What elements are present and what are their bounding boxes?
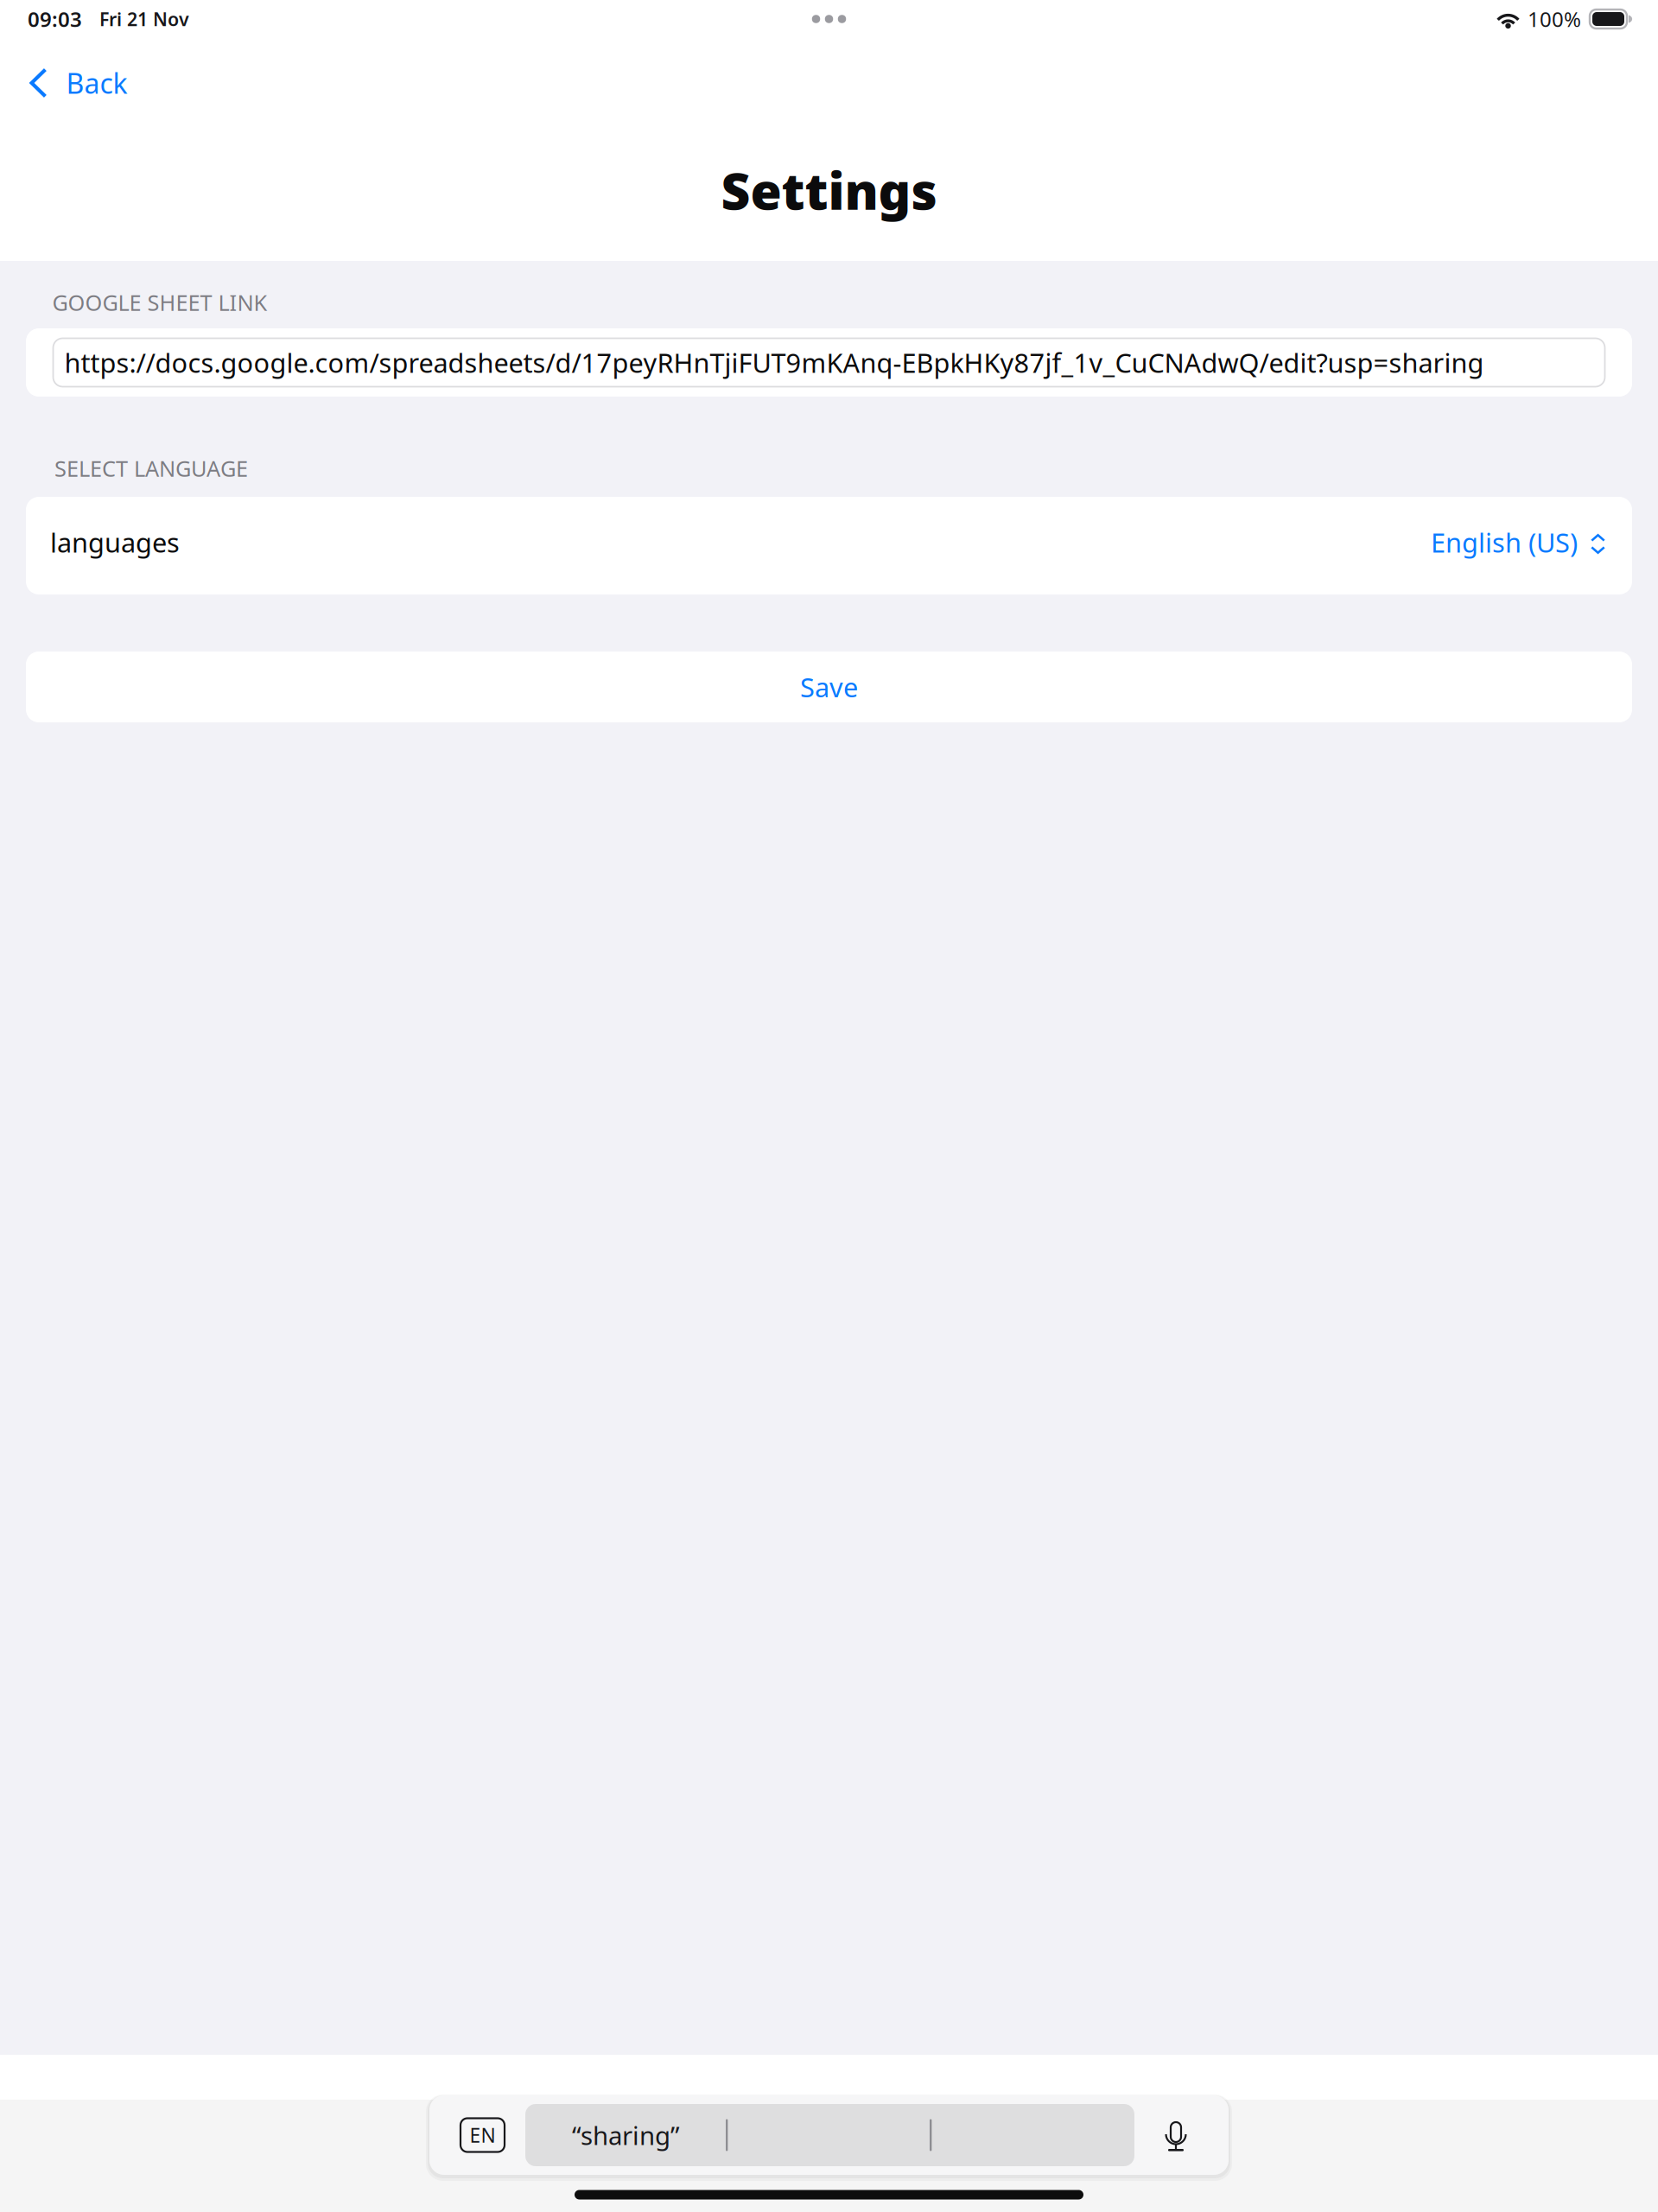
staticText: Back <box>66 65 127 101</box>
staticText: 09:03 <box>28 5 82 33</box>
button[interactable]: https://docs.google.com/spreadsheets/d/1… <box>26 328 1632 397</box>
staticText: EN <box>470 2122 495 2148</box>
staticText: Settings <box>721 156 937 224</box>
staticText: GOOGLE SHEET LINK <box>52 288 267 317</box>
staticText: English (US) <box>1431 525 1578 560</box>
staticText: Save <box>800 669 858 704</box>
staticText: languages <box>50 525 180 560</box>
staticText: 100% <box>1528 5 1581 33</box>
staticText: https://docs.google.com/spreadsheets/d/1… <box>64 345 1484 380</box>
button[interactable]: Dictate <box>1144 2104 1208 2166</box>
button[interactable]: Back <box>18 54 140 112</box>
staticText: SELECT LANGUAGE <box>54 454 248 483</box>
button[interactable]: Save <box>26 652 1632 722</box>
staticText: “sharing” <box>572 2118 680 2152</box>
button[interactable]: languages <box>26 497 1632 594</box>
button[interactable]: Keyboard language <box>461 2118 505 2152</box>
staticText: Fri 21 Nov <box>99 7 189 31</box>
button[interactable]: “sharing” <box>525 2104 1134 2166</box>
